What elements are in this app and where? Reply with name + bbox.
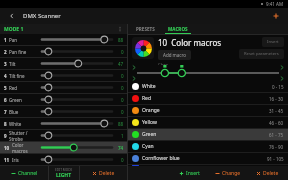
button[interactable]: EDIT MODE <box>49 166 79 180</box>
button[interactable]: 1 <box>4 34 124 45</box>
staticText: Channel <box>18 170 38 177</box>
staticText: Green <box>142 131 157 138</box>
staticText: 5 <box>4 85 7 91</box>
staticText: MACROS <box>168 26 188 32</box>
button[interactable]: MACROS <box>162 24 194 34</box>
staticText: Add macro <box>163 52 186 58</box>
staticText: 3 <box>4 61 7 67</box>
staticText: 74 <box>118 145 124 151</box>
staticText: 47 <box>118 61 124 67</box>
staticText: Insert <box>267 39 279 45</box>
staticText: Chan <box>158 62 169 65</box>
staticText: 1 <box>4 37 7 43</box>
staticText: Cornflower blue <box>142 155 180 162</box>
staticText: White <box>9 121 22 127</box>
staticText: Pan <box>9 37 18 43</box>
staticText: Pan fine <box>9 49 27 55</box>
button[interactable]: Yellow <box>132 117 284 128</box>
button[interactable]: Color wheel <box>132 37 154 59</box>
staticText: 7 <box>4 109 7 115</box>
button[interactable]: Orange <box>132 105 284 116</box>
staticText: Change <box>222 170 241 177</box>
button[interactable]: Delete <box>248 166 286 180</box>
staticText: 0 - 15 <box>272 84 284 90</box>
button[interactable]: Insert <box>170 166 208 180</box>
button[interactable]: 5 <box>4 82 124 93</box>
button[interactable]: 11 <box>4 154 124 165</box>
button[interactable]: Delete <box>80 166 127 180</box>
button[interactable]: Channel <box>0 166 48 180</box>
button[interactable]: Green <box>132 129 284 140</box>
staticText: 0 <box>121 109 124 115</box>
staticText: Delete <box>99 170 115 177</box>
staticText: LIGHT <box>56 172 72 179</box>
staticText: 88 <box>118 37 124 43</box>
staticText: Cyan <box>142 143 154 150</box>
staticText: Shutter / Strobe <box>9 130 35 141</box>
staticText: 0 <box>121 85 124 91</box>
staticText: DMX Scanner <box>23 12 61 20</box>
staticText: 0 <box>121 157 124 163</box>
staticText: Tilt <box>9 61 16 67</box>
button[interactable]: Add <box>270 10 282 22</box>
staticText: 88 <box>118 121 124 127</box>
staticText: 2 <box>4 49 7 55</box>
staticText: 31 - 45 <box>269 108 284 114</box>
button[interactable]: 6 <box>4 94 124 105</box>
staticText: 9:41 AM <box>266 1 284 7</box>
staticText: 10 <box>4 145 10 151</box>
staticText: Red <box>142 95 152 102</box>
staticText: 16 - 30 <box>269 96 284 102</box>
button[interactable]: 8 <box>4 118 124 129</box>
button[interactable]: Change <box>208 166 248 180</box>
button[interactable]: 4 <box>4 70 124 81</box>
staticText: 4 <box>4 73 7 79</box>
staticText: 0 <box>121 97 124 103</box>
staticText: 9 <box>4 133 7 139</box>
staticText: Color macros <box>12 142 38 153</box>
staticText: Tilt fine <box>9 73 25 79</box>
staticText: 91 - 105 <box>267 156 284 162</box>
button[interactable]: MODE 1 <box>4 24 123 34</box>
staticText: 0 <box>121 73 124 79</box>
button[interactable]: 9 <box>4 130 124 141</box>
button[interactable]: PRESETS <box>128 24 162 34</box>
button[interactable]: Blue <box>132 165 284 166</box>
staticText: 6 <box>4 97 7 103</box>
staticText: White <box>142 83 156 90</box>
staticText: EDIT MODE <box>55 168 73 172</box>
button[interactable]: Reset parameters <box>244 51 279 57</box>
staticText: Orange <box>142 107 160 114</box>
staticText: 1 <box>121 133 124 139</box>
button[interactable]: Red <box>132 93 284 104</box>
staticText: Yellow <box>142 119 157 126</box>
button[interactable]: Insert <box>267 39 279 45</box>
staticText: Blue <box>9 109 19 115</box>
button[interactable]: 2 <box>4 46 124 57</box>
staticText: 8 <box>4 121 7 127</box>
staticText: Green <box>9 97 22 103</box>
staticText: 0 <box>121 49 124 55</box>
button[interactable]: Back <box>6 10 18 22</box>
staticText: Red <box>9 85 18 91</box>
button[interactable]: 10 <box>4 142 124 153</box>
staticText: 76 - 90 <box>269 144 284 150</box>
button[interactable]: Cyan <box>132 141 284 152</box>
staticText: Reset parameters <box>244 51 279 57</box>
staticText: 11 <box>4 157 10 163</box>
staticText: 46 - 60 <box>269 120 284 126</box>
staticText: 61 - 75 <box>269 132 284 138</box>
button[interactable]: 3 <box>4 58 124 69</box>
button[interactable]: Add macro <box>163 52 186 58</box>
button[interactable]: White <box>132 81 284 92</box>
staticText: PRESETS <box>136 26 155 32</box>
staticText: Iris <box>12 157 19 163</box>
staticText: Delete <box>263 170 279 177</box>
staticText: MODE 1 <box>4 26 24 33</box>
staticText: Insert <box>186 170 200 177</box>
staticText: 10 Color macros <box>158 37 222 48</box>
button[interactable]: Cornflower blue <box>132 153 284 164</box>
button[interactable]: 7 <box>4 106 124 117</box>
